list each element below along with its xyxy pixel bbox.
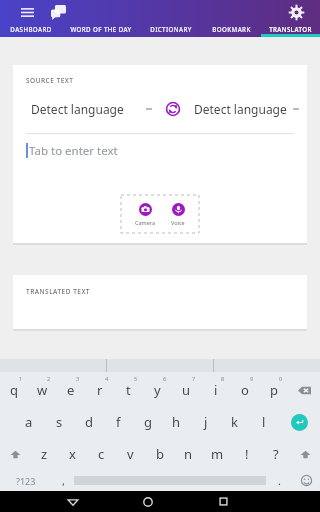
staticText: ?: [273, 445, 279, 463]
button[interactable]: f: [104, 406, 133, 438]
button[interactable]: ?123: [0, 470, 52, 491]
staticText: d: [85, 413, 93, 431]
staticText: q: [10, 381, 18, 399]
staticText: w: [37, 381, 48, 399]
staticText: .: [278, 473, 281, 488]
staticText: 1: [19, 375, 23, 382]
staticText: 7: [192, 375, 196, 382]
staticText: 5: [134, 375, 138, 382]
button[interactable]: Swap languages: [163, 99, 183, 119]
staticText: ,: [62, 473, 65, 488]
button[interactable]: BOOKMARK: [202, 21, 261, 37]
staticText: y: [154, 381, 161, 399]
staticText: e: [67, 381, 75, 399]
button[interactable]: Camera: [135, 203, 156, 226]
button[interactable]: Menu: [18, 3, 36, 21]
button[interactable]: .: [266, 470, 292, 491]
button[interactable]: k: [220, 406, 249, 438]
button[interactable]: l: [249, 406, 278, 438]
staticText: WORD OF THE DAY: [70, 25, 132, 33]
staticText: u: [182, 381, 191, 399]
staticText: TRANSLATOR: [269, 25, 312, 33]
button[interactable]: x: [58, 438, 87, 470]
button[interactable]: m: [203, 438, 232, 470]
button[interactable]: e: [56, 374, 85, 406]
staticText: DICTIONARY: [150, 25, 192, 33]
staticText: Tab to enter text: [29, 143, 118, 159]
button[interactable]: v: [116, 438, 145, 470]
button[interactable]: Recent apps: [212, 491, 234, 512]
button[interactable]: Shift: [290, 438, 320, 470]
button[interactable]: b: [145, 438, 174, 470]
staticText: f: [116, 413, 121, 431]
staticText: 9: [250, 375, 254, 382]
button[interactable]: s: [44, 406, 74, 438]
button[interactable]: i: [201, 374, 230, 406]
button[interactable]: Settings: [286, 2, 306, 22]
staticText: 6: [163, 375, 167, 382]
button[interactable]: Detect language: [194, 101, 307, 117]
button[interactable]: c: [87, 438, 116, 470]
button[interactable]: y: [143, 374, 172, 406]
button[interactable]: u: [172, 374, 201, 406]
button[interactable]: TRANSLATOR: [261, 21, 320, 37]
staticText: Detect language: [194, 101, 287, 117]
staticText: Camera: [135, 219, 156, 226]
button[interactable]: h: [162, 406, 191, 438]
button[interactable]: Emoji: [292, 470, 320, 491]
staticText: BOOKMARK: [212, 25, 251, 33]
button[interactable]: p: [259, 374, 288, 406]
staticText: ?123: [16, 475, 36, 487]
staticText: DASHBOARD: [10, 25, 52, 33]
button[interactable]: t: [114, 374, 143, 406]
staticText: h: [172, 413, 181, 431]
button[interactable]: Voice: [171, 203, 185, 226]
staticText: 8: [221, 375, 225, 382]
button[interactable]: [74, 470, 266, 491]
button[interactable]: Home: [137, 491, 159, 512]
button[interactable]: DICTIONARY: [140, 21, 202, 37]
staticText: m: [211, 445, 224, 463]
staticText: x: [69, 445, 76, 463]
button[interactable]: Backspace: [288, 374, 320, 406]
button[interactable]: w: [28, 374, 56, 406]
staticText: g: [144, 413, 152, 431]
button[interactable]: Detect language: [31, 101, 152, 117]
staticText: i: [214, 381, 218, 399]
staticText: TRANSLATED TEXT: [26, 287, 91, 296]
button[interactable]: g: [133, 406, 162, 438]
button[interactable]: !: [232, 438, 261, 470]
button[interactable]: ,: [52, 470, 74, 491]
staticText: !: [245, 445, 249, 463]
button[interactable]: z: [30, 438, 58, 470]
button[interactable]: d: [74, 406, 104, 438]
staticText: k: [231, 413, 238, 431]
button[interactable]: Shift: [0, 438, 30, 470]
button[interactable]: Back: [62, 491, 84, 512]
button[interactable]: DASHBOARD: [0, 21, 61, 37]
button[interactable]: Enter: [278, 406, 320, 438]
staticText: 0: [279, 375, 283, 382]
button[interactable]: WORD OF THE DAY: [61, 21, 140, 37]
staticText: c: [98, 445, 105, 463]
staticText: o: [241, 381, 249, 399]
staticText: b: [156, 445, 164, 463]
staticText: SOURCE TEXT: [26, 76, 74, 85]
staticText: l: [262, 413, 266, 431]
button[interactable]: ?: [261, 438, 290, 470]
staticText: 3: [76, 375, 80, 382]
staticText: s: [56, 413, 63, 431]
button[interactable]: j: [191, 406, 220, 438]
button[interactable]: Chat: [48, 2, 68, 22]
staticText: Voice: [171, 219, 185, 226]
button[interactable]: n: [174, 438, 203, 470]
staticText: p: [270, 381, 278, 399]
staticText: v: [127, 445, 134, 463]
staticText: r: [97, 381, 103, 399]
button[interactable]: a: [14, 406, 44, 438]
button[interactable]: o: [230, 374, 259, 406]
button[interactable]: q: [0, 374, 28, 406]
button[interactable]: r: [85, 374, 114, 406]
staticText: 4: [105, 375, 109, 382]
staticText: a: [25, 413, 33, 431]
